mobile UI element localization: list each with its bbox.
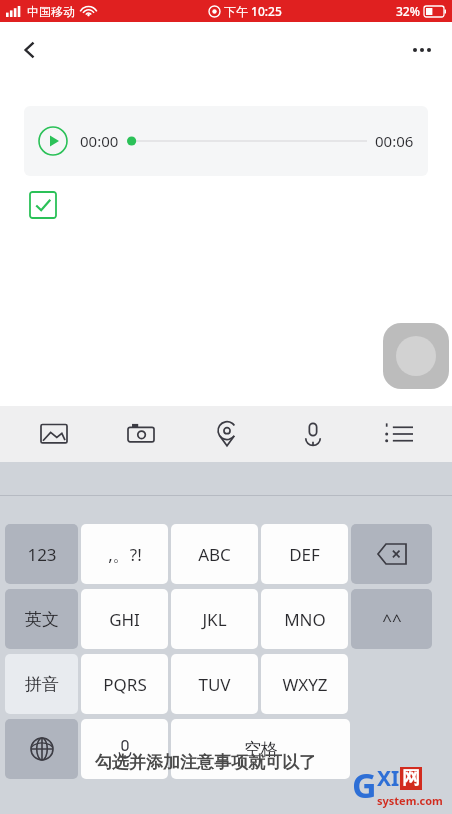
button[interactable]: 空格	[171, 719, 350, 779]
staticText: G	[352, 762, 377, 808]
staticText: 中国移动	[27, 4, 75, 19]
staticText: ,。?!	[108, 543, 142, 566]
button[interactable]: Image	[10, 406, 97, 462]
staticText: 00:00	[80, 131, 119, 151]
staticText: MNO	[284, 608, 326, 631]
staticText: GHI	[109, 608, 140, 631]
staticText: JKL	[202, 608, 227, 631]
staticText: 拼音	[25, 674, 59, 695]
staticText: 网	[402, 767, 420, 790]
button[interactable]: 拼音	[5, 654, 78, 714]
button[interactable]: Camera	[97, 406, 184, 462]
staticText: system.com	[377, 793, 443, 808]
button[interactable]: More options	[400, 28, 444, 72]
staticText: DEF	[289, 543, 320, 566]
button[interactable]: PQRS	[81, 654, 168, 714]
button[interactable]: 123	[5, 524, 78, 584]
staticText: PQRS	[103, 673, 147, 696]
button[interactable]: GHI	[81, 589, 168, 649]
staticText: 勾选并添加注意事项就可以了	[95, 752, 316, 773]
button[interactable]: Voice input	[81, 719, 168, 779]
staticText: 32%	[396, 3, 420, 19]
button[interactable]: List	[356, 406, 442, 462]
button[interactable]: MNO	[261, 589, 348, 649]
button[interactable]: Location	[184, 406, 270, 462]
button[interactable]: JKL	[171, 589, 258, 649]
button[interactable]: Play	[24, 106, 428, 176]
button[interactable]: Voice	[270, 406, 356, 462]
staticText: ABC	[198, 543, 231, 566]
staticText: 英文	[25, 609, 59, 630]
button[interactable]: TUV	[171, 654, 258, 714]
button[interactable]: 英文	[5, 589, 78, 649]
staticText: 空格	[244, 739, 278, 760]
button[interactable]: Back	[8, 28, 52, 72]
button[interactable]: ,。?!	[81, 524, 168, 584]
staticText: ^^	[382, 608, 402, 631]
staticText: 00:06	[375, 131, 414, 151]
staticText: XI	[377, 764, 400, 793]
button[interactable]: DEF	[261, 524, 348, 584]
staticText: WXYZ	[282, 673, 328, 696]
button[interactable]: Checkbox	[30, 192, 56, 218]
button[interactable]: Record	[383, 323, 449, 389]
button[interactable]: ABC	[171, 524, 258, 584]
button[interactable]: WXYZ	[261, 654, 348, 714]
button[interactable]: Switch language	[5, 719, 78, 779]
button[interactable]: Play	[38, 126, 68, 156]
staticText: TUV	[198, 673, 231, 696]
button[interactable]: ^^	[351, 589, 432, 649]
button[interactable]: Backspace	[351, 524, 432, 584]
staticText: 123	[27, 543, 57, 566]
staticText: 下午 10:25	[224, 3, 282, 19]
